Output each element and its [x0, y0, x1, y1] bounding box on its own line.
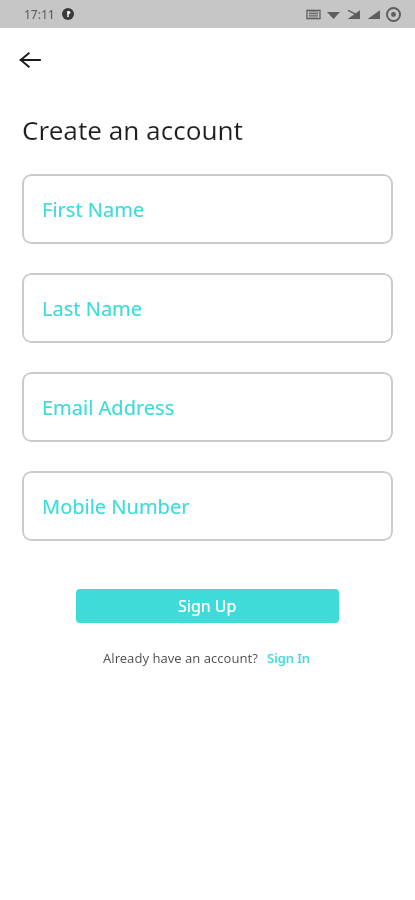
- staticText: First Name: [42, 196, 145, 223]
- button[interactable]: Sign In: [266, 647, 312, 669]
- staticText: 17:11: [24, 6, 55, 22]
- button[interactable]: First Name: [22, 174, 393, 244]
- button[interactable]: Back: [10, 40, 50, 80]
- button[interactable]: Mobile Number: [22, 471, 393, 541]
- staticText: Sign Up: [178, 595, 237, 617]
- staticText: Email Address: [42, 394, 175, 421]
- button[interactable]: Sign Up: [76, 589, 339, 623]
- button[interactable]: Email Address: [22, 372, 393, 442]
- staticText: Last Name: [42, 295, 143, 322]
- staticText: Already have an account?: [103, 649, 258, 667]
- button[interactable]: Last Name: [22, 273, 393, 343]
- staticText: Sign In: [267, 649, 311, 667]
- staticText: Create an account: [22, 112, 243, 147]
- staticText: Mobile Number: [42, 493, 190, 520]
